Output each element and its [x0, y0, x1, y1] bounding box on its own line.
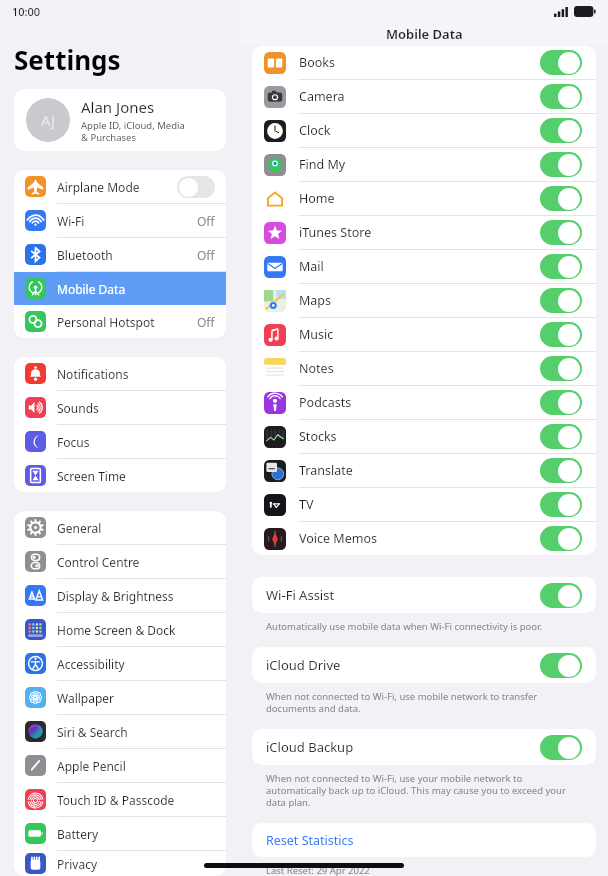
staticText: Stocks: [299, 428, 540, 445]
button[interactable]: Bluetooth: [14, 238, 226, 272]
button[interactable]: Voice Memos toggle: [540, 526, 582, 551]
staticText: Home: [299, 190, 540, 207]
button[interactable]: Podcasts toggle: [540, 390, 582, 415]
button[interactable]: Wi-Fi Assist toggle: [540, 583, 582, 608]
button[interactable]: Accessibility: [14, 647, 226, 681]
staticText: Mobile Data: [386, 25, 463, 43]
button[interactable]: Clock toggle: [540, 118, 582, 143]
staticText: Music: [299, 326, 540, 343]
button[interactable]: Music toggle: [540, 322, 582, 347]
staticText: Bluetooth: [57, 247, 197, 263]
button[interactable]: Battery: [14, 817, 226, 851]
button[interactable]: Apple Pencil: [14, 749, 226, 783]
button[interactable]: iCloud Drive toggle: [540, 653, 582, 678]
staticText: iTunes Store: [299, 224, 540, 241]
button[interactable]: Camera toggle: [540, 84, 582, 109]
button[interactable]: iCloud Drive: [252, 647, 596, 683]
button[interactable]: Touch ID & Passcode: [14, 783, 226, 817]
button[interactable]: Sounds: [14, 391, 226, 425]
staticText: Mobile Data: [57, 281, 215, 297]
button[interactable]: Music: [252, 318, 596, 352]
staticText: Translate: [299, 462, 540, 479]
staticText: Podcasts: [299, 394, 540, 411]
button[interactable]: TV: [252, 488, 596, 522]
button[interactable]: Control Centre: [14, 545, 226, 579]
button[interactable]: Wi-Fi Assist: [252, 577, 596, 613]
staticText: TV: [299, 496, 540, 513]
staticText: Battery: [57, 826, 215, 842]
staticText: Airplane Mode: [57, 179, 177, 195]
button[interactable]: Mail: [252, 250, 596, 284]
button[interactable]: Books: [252, 46, 596, 80]
staticText: Accessibility: [57, 656, 215, 672]
button[interactable]: Wallpaper: [14, 681, 226, 715]
button[interactable]: Notes toggle: [540, 356, 582, 381]
staticText: Voice Memos: [299, 530, 540, 547]
staticText: Alan Jones: [81, 97, 155, 117]
staticText: Notes: [299, 360, 540, 377]
button[interactable]: Find My toggle: [540, 152, 582, 177]
button[interactable]: Stocks toggle: [540, 424, 582, 449]
button[interactable]: Clock: [252, 114, 596, 148]
staticText: Mail: [299, 258, 540, 275]
staticText: Automatically use mobile data when Wi-Fi…: [266, 620, 543, 633]
staticText: Focus: [57, 434, 215, 450]
staticText: Notifications: [57, 366, 215, 382]
staticText: Privacy: [57, 856, 215, 872]
button[interactable]: iTunes Store toggle: [540, 220, 582, 245]
staticText: Sounds: [57, 400, 215, 416]
button[interactable]: Siri & Search: [14, 715, 226, 749]
button[interactable]: Privacy: [14, 851, 226, 876]
button[interactable]: Airplane Mode: [14, 170, 226, 204]
button[interactable]: Find My: [252, 148, 596, 182]
staticText: AJ: [41, 110, 56, 130]
button[interactable]: Voice Memos: [252, 522, 596, 555]
staticText: Wi-Fi: [57, 213, 197, 229]
button[interactable]: Camera: [252, 80, 596, 114]
staticText: Control Centre: [57, 554, 215, 570]
button[interactable]: AJ: [14, 89, 226, 151]
staticText: 10:00: [12, 4, 41, 19]
staticText: Apple ID, iCloud, Media & Purchases: [81, 119, 185, 144]
button[interactable]: Mail toggle: [540, 254, 582, 279]
button[interactable]: Translate: [252, 454, 596, 488]
button[interactable]: Stocks: [252, 420, 596, 454]
button[interactable]: Books toggle: [540, 50, 582, 75]
button[interactable]: Home Screen & Dock: [14, 613, 226, 647]
staticText: Off: [197, 247, 215, 263]
staticText: Reset Statistics: [266, 832, 354, 849]
button[interactable]: Display & Brightness: [14, 579, 226, 613]
staticText: Off: [197, 213, 215, 229]
button[interactable]: iCloud Backup: [252, 729, 596, 765]
staticText: Screen Time: [57, 468, 215, 484]
button[interactable]: Screen Time: [14, 459, 226, 492]
staticText: Clock: [299, 122, 540, 139]
button[interactable]: Wi-Fi: [14, 204, 226, 238]
button[interactable]: General: [14, 511, 226, 545]
staticText: Last Reset: 29 Apr 2022: [266, 864, 370, 876]
staticText: Wallpaper: [57, 690, 215, 706]
button[interactable]: iTunes Store: [252, 216, 596, 250]
button[interactable]: Home toggle: [540, 186, 582, 211]
button[interactable]: Maps toggle: [540, 288, 582, 313]
button[interactable]: iCloud Backup toggle: [540, 735, 582, 760]
staticText: Touch ID & Passcode: [57, 792, 215, 808]
button[interactable]: Notes: [252, 352, 596, 386]
button[interactable]: Reset Statistics: [252, 823, 596, 857]
button[interactable]: Home: [252, 182, 596, 216]
button[interactable]: Focus: [14, 425, 226, 459]
button[interactable]: Translate toggle: [540, 458, 582, 483]
staticText: Wi-Fi Assist: [266, 586, 540, 604]
staticText: Personal Hotspot: [57, 314, 197, 330]
button[interactable]: Personal Hotspot: [14, 305, 226, 338]
button[interactable]: TV toggle: [540, 492, 582, 517]
button[interactable]: Notifications: [14, 357, 226, 391]
staticText: Camera: [299, 88, 540, 105]
button[interactable]: Podcasts: [252, 386, 596, 420]
staticText: Find My: [299, 156, 540, 173]
button[interactable]: Maps: [252, 284, 596, 318]
button[interactable]: Mobile Data: [14, 272, 226, 305]
staticText: Home Screen & Dock: [57, 622, 215, 638]
button[interactable]: Airplane Mode toggle: [177, 176, 215, 198]
staticText: Display & Brightness: [57, 588, 215, 604]
